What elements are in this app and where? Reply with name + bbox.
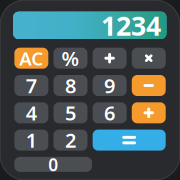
staticText: 7: [26, 72, 37, 99]
button[interactable]: 2: [53, 130, 87, 151]
button[interactable]: %: [53, 48, 87, 69]
button[interactable]: Multiply: [132, 48, 166, 69]
button[interactable]: Equals: [93, 130, 166, 151]
button[interactable]: 0: [14, 157, 92, 172]
staticText: 1: [26, 127, 37, 153]
button[interactable]: AC: [14, 48, 48, 69]
staticText: 8: [65, 72, 76, 99]
staticText: 2: [65, 127, 76, 153]
staticText: 5: [65, 99, 76, 126]
button[interactable]: 7: [14, 75, 48, 96]
staticText: %: [61, 45, 79, 71]
staticText: 4: [26, 99, 37, 126]
staticText: 9: [104, 72, 115, 99]
button[interactable]: 9: [93, 75, 127, 96]
button[interactable]: 4: [14, 102, 48, 123]
staticText: 1234: [101, 8, 161, 43]
button[interactable]: 5: [53, 102, 87, 123]
button[interactable]: Plus: [132, 102, 166, 123]
staticText: 6: [104, 99, 115, 126]
button[interactable]: Plus: [93, 48, 127, 69]
button[interactable]: 1: [14, 130, 48, 151]
button[interactable]: 8: [53, 75, 87, 96]
staticText: AC: [19, 46, 43, 71]
button[interactable]: 6: [93, 102, 127, 123]
button[interactable]: Minus: [132, 75, 166, 96]
staticText: 0: [48, 153, 58, 176]
